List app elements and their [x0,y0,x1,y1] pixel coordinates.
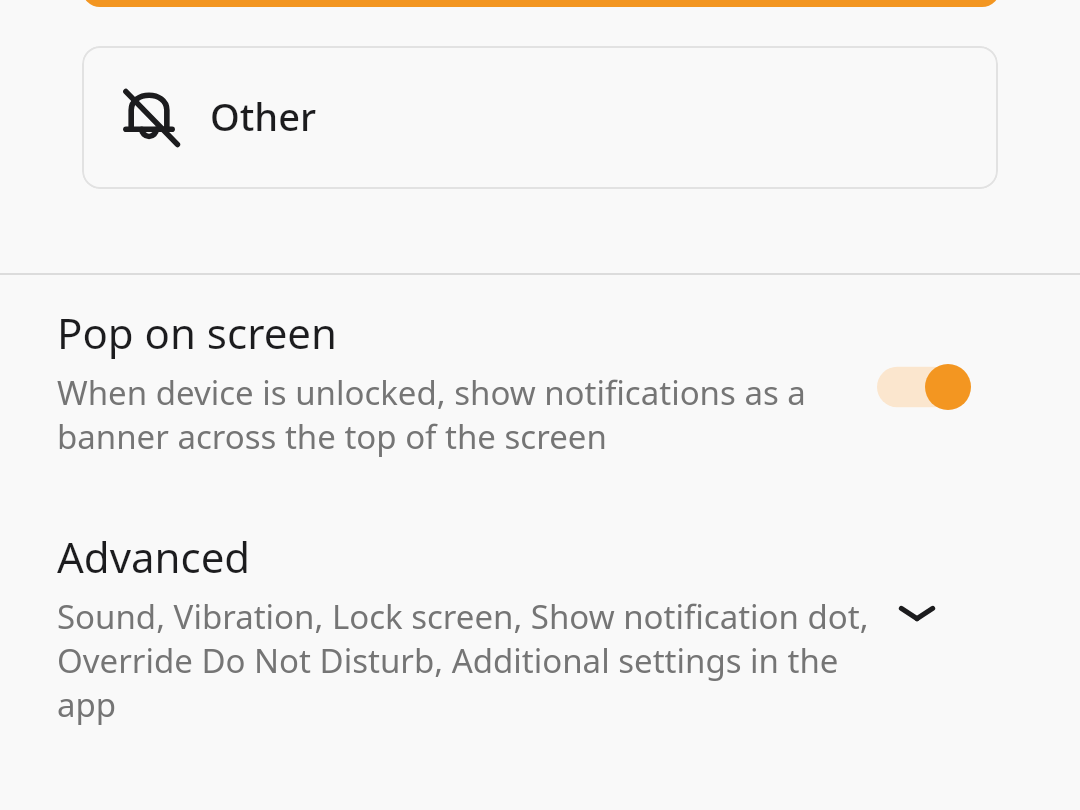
button[interactable]: Notifications off [82,46,998,189]
button[interactable]: Pop on screen toggle [877,364,971,410]
other: Notifications off [118,85,184,151]
staticText: Other [210,96,317,140]
button[interactable] [82,0,1000,7]
button[interactable]: Expand advanced settings [887,584,947,644]
staticText: When device is unlocked, show notificati… [57,370,867,458]
staticText: Pop on screen [57,310,337,360]
staticText: Sound, Vibration, Lock screen, Show noti… [57,594,887,726]
button[interactable]: Pop on screen [0,296,1080,472]
button[interactable]: Advanced [0,520,1080,740]
staticText: Advanced [57,534,251,584]
